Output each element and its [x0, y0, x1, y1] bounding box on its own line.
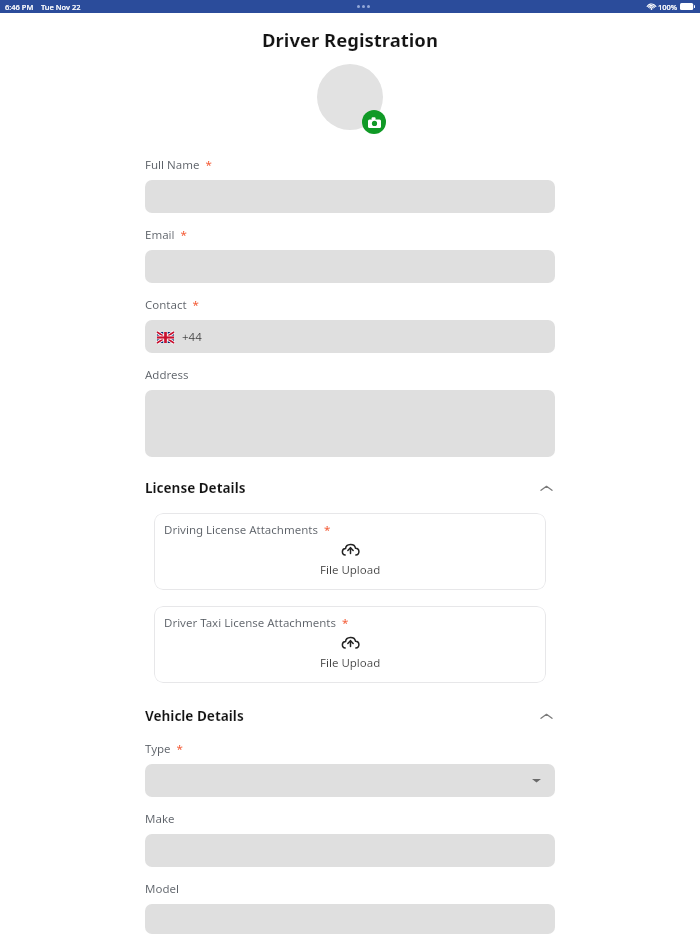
button[interactable]: Change profile photo — [316, 64, 384, 132]
button[interactable]: Vehicle Details — [145, 707, 555, 725]
staticText: Tue Nov 22 — [41, 2, 81, 12]
staticText: File Upload — [320, 562, 381, 578]
staticText: 6:46 PM — [5, 2, 34, 12]
staticText: +44 — [182, 329, 202, 345]
staticText: Model — [145, 881, 179, 897]
staticText: Type * — [145, 741, 183, 757]
staticText: Contact * — [145, 297, 199, 313]
staticText: Full Name * — [145, 157, 212, 173]
staticText: License Details — [145, 479, 246, 497]
staticText: File Upload — [320, 655, 381, 671]
staticText: Vehicle Details — [145, 707, 244, 725]
button[interactable]: Select vehicle type — [145, 764, 555, 797]
other: Collapse License Details — [537, 479, 555, 497]
button[interactable]: +44 — [145, 320, 555, 353]
staticText: Email * — [145, 227, 187, 243]
staticText: Address — [145, 367, 189, 383]
staticText: Driver Taxi License Attachments * — [164, 615, 349, 631]
button[interactable]: License Details — [145, 479, 555, 497]
staticText: 100% — [658, 2, 678, 12]
button[interactable]: Driver Taxi License Attachments * — [154, 606, 546, 683]
staticText: Make — [145, 811, 175, 827]
button[interactable]: Driving License Attachments * — [154, 513, 546, 590]
other: Collapse Vehicle Details — [537, 707, 555, 725]
staticText: Driver Registration — [0, 27, 700, 52]
staticText: Driving License Attachments * — [164, 522, 331, 538]
